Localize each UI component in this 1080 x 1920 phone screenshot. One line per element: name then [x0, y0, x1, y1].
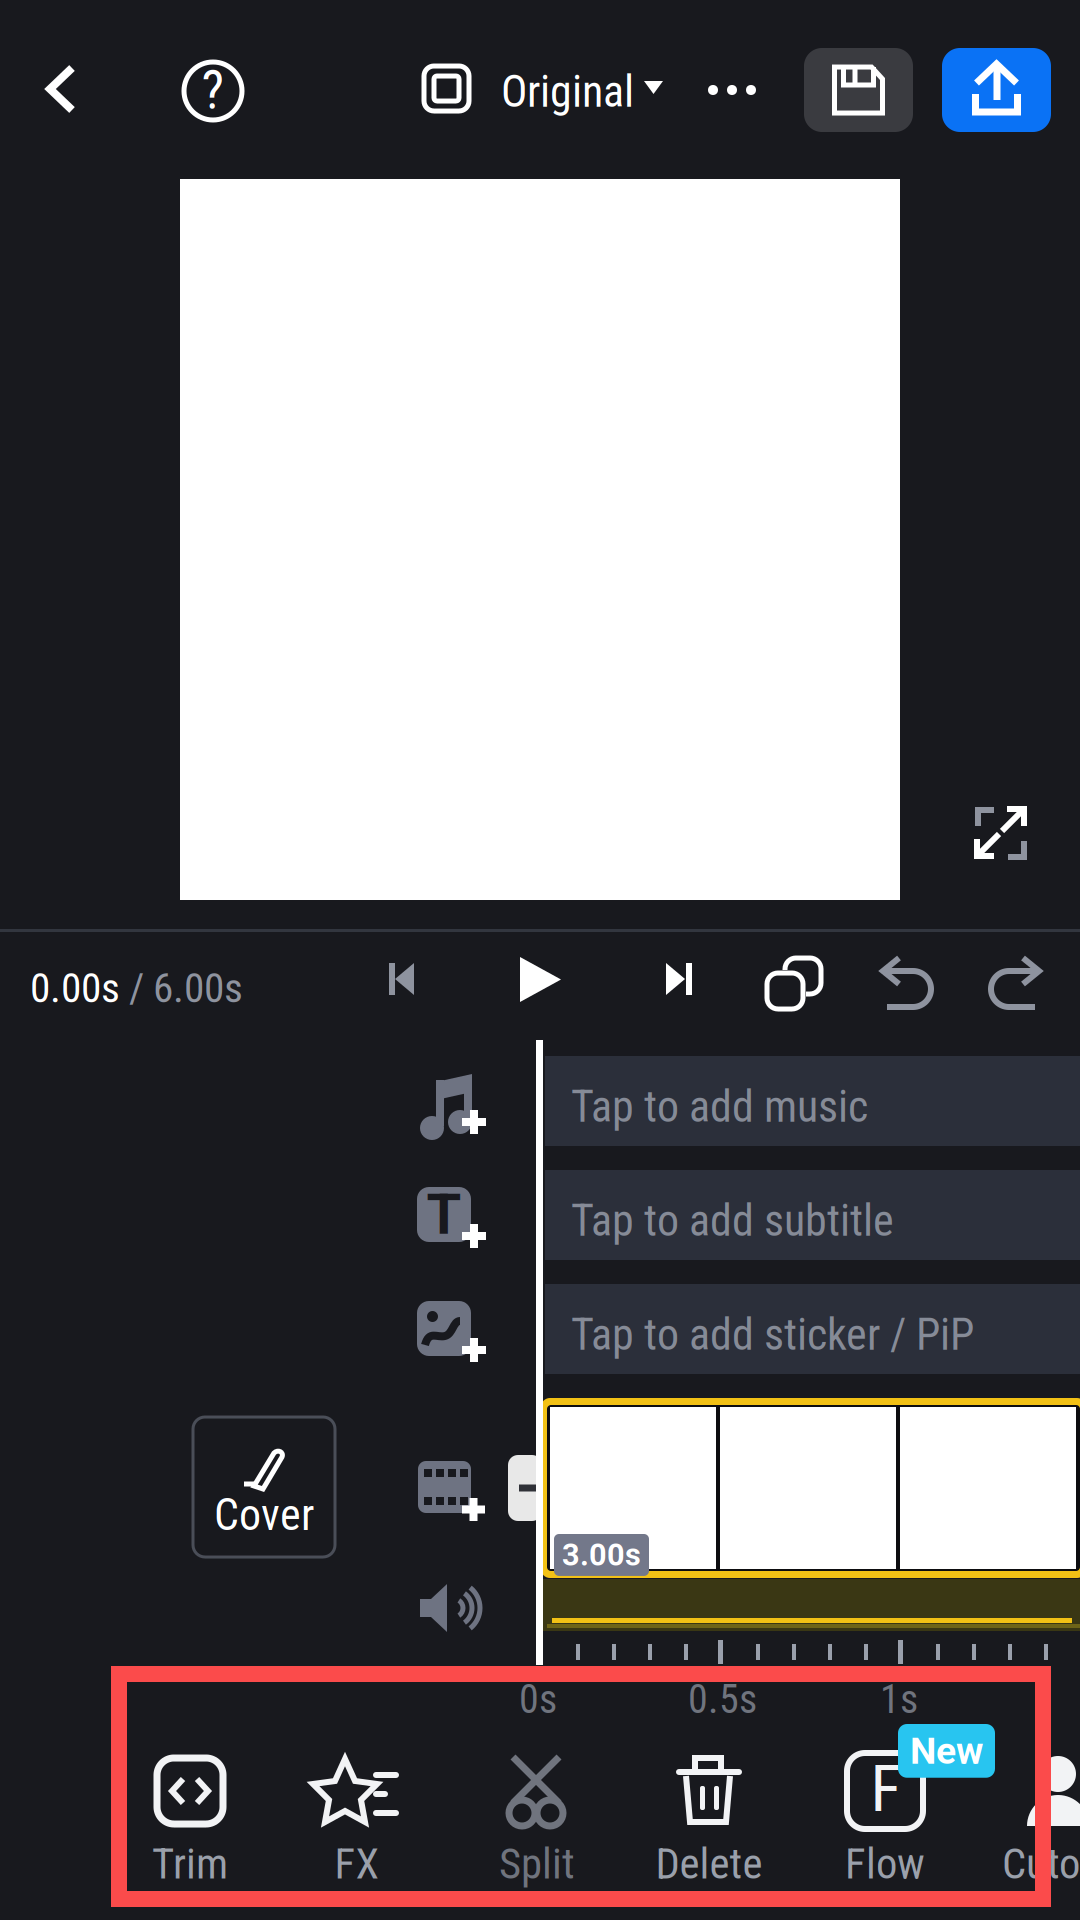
staticText: F [870, 1751, 901, 1826]
button[interactable]: Save draft [804, 48, 913, 132]
staticText: Cover [214, 1489, 314, 1541]
button[interactable]: FX [277, 1756, 437, 1886]
staticText: 3.00s [562, 1537, 641, 1573]
button[interactable]: Cutout [978, 1756, 1080, 1886]
staticText: FX [334, 1839, 379, 1889]
staticText: Split [499, 1839, 575, 1889]
button[interactable]: F [805, 1756, 965, 1886]
button[interactable]: Export [942, 48, 1051, 132]
staticText: 0.5s [688, 1676, 757, 1723]
staticText: Tap to add sticker / PiP [571, 1309, 974, 1361]
staticText: New [910, 1729, 983, 1773]
staticText: Tap to add subtitle [571, 1195, 894, 1247]
button[interactable]: Cover [193, 1417, 335, 1557]
button[interactable]: Aspect ratio Original [424, 44, 674, 134]
button[interactable]: Tap to add subtitle [545, 1170, 1080, 1260]
button[interactable]: Undo [879, 958, 935, 1012]
button[interactable]: Split [457, 1756, 617, 1886]
button[interactable]: Skip to end [666, 963, 692, 995]
button[interactable]: Add clip [418, 1461, 485, 1521]
button[interactable]: Redo [987, 958, 1043, 1012]
staticText: 1s [880, 1676, 918, 1723]
staticText: Original [501, 66, 634, 118]
staticText: T [426, 1182, 461, 1247]
button[interactable]: Duplicate [764, 958, 821, 1009]
button[interactable]: Add subtitle [417, 1187, 486, 1248]
button[interactable]: Back [45, 64, 77, 114]
button[interactable]: Add music [416, 1068, 492, 1144]
staticText: Delete [655, 1839, 762, 1889]
button[interactable]: Help [184, 62, 242, 120]
button[interactable]: Fullscreen [975, 807, 1027, 860]
staticText: Cutout [1002, 1839, 1080, 1889]
button[interactable]: Skip to start [389, 963, 415, 995]
button[interactable]: Trim [110, 1756, 270, 1886]
button[interactable]: Delete [629, 1756, 789, 1886]
button[interactable]: Add sticker or PiP [417, 1301, 486, 1362]
button[interactable]: Tap to add music [545, 1056, 1080, 1146]
staticText: Trim [152, 1839, 228, 1889]
staticText: / 6.00s [120, 964, 243, 1012]
staticText: 0.00s [30, 964, 120, 1012]
button[interactable]: Tap to add sticker / PiP [545, 1284, 1080, 1374]
button[interactable]: Play [520, 957, 561, 1002]
staticText: Tap to add music [571, 1081, 868, 1133]
staticText: Flow [845, 1839, 925, 1889]
button[interactable]: More options [708, 85, 756, 95]
button[interactable]: Volume [420, 1584, 482, 1632]
staticText: 0s [519, 1676, 557, 1723]
staticText: ? [201, 59, 224, 121]
